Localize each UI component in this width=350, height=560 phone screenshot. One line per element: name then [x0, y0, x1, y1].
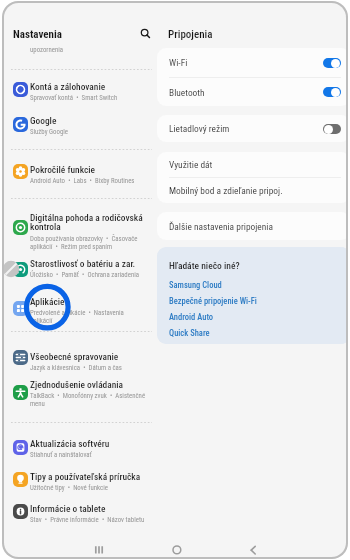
staticText: Android Auto • Labs • Bixby Routines — [30, 177, 135, 185]
button[interactable]: Bluetooth — [157, 78, 346, 106]
staticText: Mobilný bod a zdieľanie pripoj. — [169, 185, 341, 196]
staticText: Lietadlový režim — [169, 123, 323, 134]
button[interactable]: Samsung Cloud — [169, 277, 222, 293]
staticText: Kontá a zálohovanie — [30, 81, 106, 92]
staticText: Stiahnuť a nainštalovať — [30, 451, 92, 459]
button[interactable]: Wi-Fi — [323, 58, 341, 68]
staticText: Jazyk a klávesnica • Dátum a čas — [30, 364, 122, 372]
button[interactable]: Mobilný bod a zdieľanie pripoj. — [157, 178, 346, 203]
staticText: Užitočné tipy • Nové funkcie — [30, 484, 108, 492]
staticText: Bezpečné pripojenie Wi-Fi — [169, 296, 257, 306]
button[interactable]: Pokročilé funkcie — [30, 164, 146, 185]
staticText: Wi-Fi — [169, 57, 323, 68]
button[interactable]: Starostlivosť o batériu a zar. — [30, 258, 146, 279]
button[interactable]: Kontá a zálohovanie — [30, 81, 146, 102]
staticText: Tipy a používateľská príručka — [30, 471, 141, 482]
button[interactable]: Všeobecné spravovanie — [30, 351, 146, 372]
button[interactable]: Zjednodušenie ovládania — [30, 379, 146, 408]
staticText: Všeobecné spravovanie — [30, 351, 119, 362]
staticText: Úložisko • Pamäť • Ochrana zariadenia — [30, 271, 140, 279]
button[interactable]: Lietadlový režim — [157, 115, 346, 142]
staticText: Google — [30, 115, 57, 126]
staticText: Bluetooth — [169, 87, 323, 98]
staticText: Predvolené aplikácie • Nastavenia apliká… — [30, 309, 146, 325]
button[interactable]: Back — [240, 537, 266, 557]
button[interactable]: Recent apps — [86, 537, 112, 557]
staticText: Zjednodušenie ovládania — [30, 379, 124, 390]
staticText: upozornenia — [30, 46, 63, 54]
button[interactable]: Aplikácie — [30, 296, 146, 325]
staticText: Doba používania obrazovky • Časovače apl… — [30, 235, 146, 251]
staticText: Stav • Právne informácie • Názov tabletu — [30, 516, 145, 524]
staticText: Starostlivosť o batériu a zar. — [30, 258, 136, 269]
button[interactable]: Android Auto — [169, 309, 214, 325]
staticText: Pokročilé funkcie — [30, 164, 96, 175]
staticText: Samsung Cloud — [169, 280, 222, 290]
button[interactable]: Informácie o tablete — [30, 503, 146, 524]
button[interactable]: Tipy a používateľská príručka — [30, 471, 146, 492]
button[interactable]: Wi-Fi — [157, 48, 346, 77]
button[interactable]: Search — [134, 22, 156, 44]
button[interactable]: Home — [164, 537, 190, 557]
button[interactable]: Využitie dát — [157, 152, 346, 177]
staticText: Aktualizácia softvéru — [30, 438, 110, 449]
staticText: Aplikácie — [30, 296, 65, 307]
staticText: Ďalšie nastavenia pripojenia — [169, 221, 341, 232]
button[interactable]: Bluetooth — [323, 87, 341, 97]
button[interactable]: Google — [30, 115, 146, 136]
staticText: Spravovať kontá • Smart Switch — [30, 94, 118, 102]
staticText: Quick Share — [169, 328, 210, 338]
button[interactable]: Digitálna pohoda a rodičovská kontrola — [30, 212, 146, 251]
button[interactable]: Quick Share — [169, 325, 210, 341]
staticText: TalkBack • Monofónny zvuk • Asistenčné m… — [30, 392, 146, 408]
staticText: Nastavenia — [13, 28, 62, 41]
staticText: Digitálna pohoda a rodičovská kontrola — [30, 212, 146, 233]
button[interactable]: Bezpečné pripojenie Wi-Fi — [169, 293, 257, 309]
button[interactable]: Aktualizácia softvéru — [30, 438, 146, 459]
staticText: Informácie o tablete — [30, 503, 106, 514]
staticText: Android Auto — [169, 312, 214, 322]
button[interactable]: Ďalšie nastavenia pripojenia — [157, 212, 346, 240]
staticText: Pripojenia — [168, 28, 213, 41]
staticText: Využitie dát — [169, 159, 341, 170]
button[interactable]: Lietadlový režim — [323, 124, 341, 134]
staticText: Služby Google — [30, 128, 68, 136]
staticText: Hľadáte niečo iné? — [169, 260, 240, 271]
